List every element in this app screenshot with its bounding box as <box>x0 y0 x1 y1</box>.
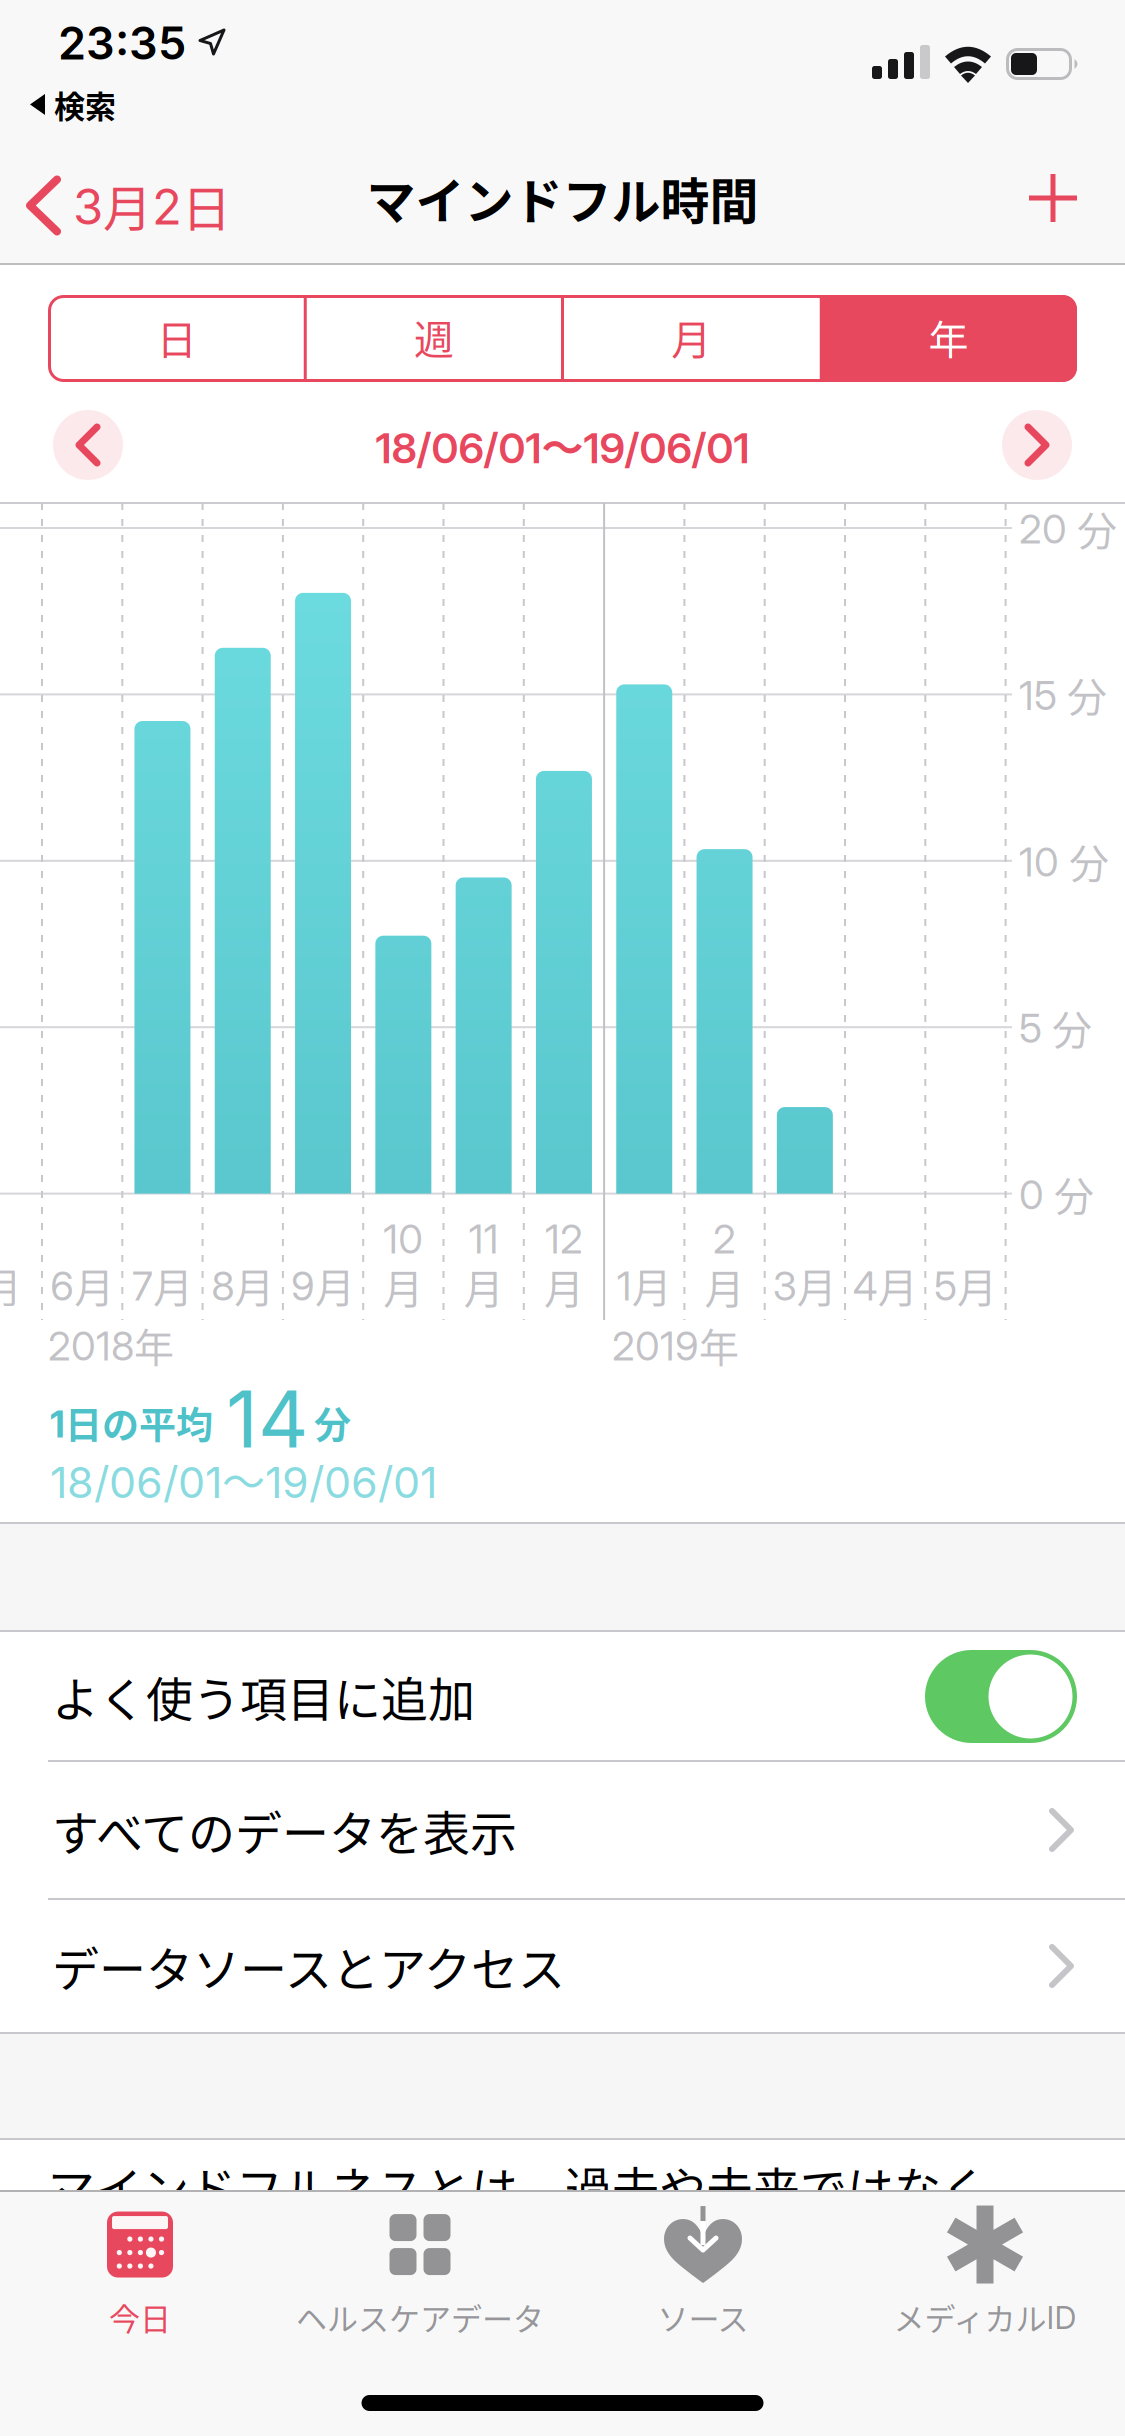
staticText: 月 <box>704 1257 744 1315</box>
staticText: 18/06/01〜19/06/01 <box>50 1448 437 1510</box>
button[interactable]: よく使う項目に追加 <box>925 1650 1077 1743</box>
staticText: 8月 <box>211 1256 274 1314</box>
staticText: 2019年 <box>612 1316 739 1374</box>
button[interactable]: 年 <box>820 295 1077 379</box>
staticText: 6月 <box>50 1256 114 1314</box>
button[interactable]: 今日 <box>0 2204 285 2342</box>
staticText: 月 <box>671 308 711 366</box>
staticText: 日 <box>157 308 197 366</box>
staticText: 10 <box>383 1215 423 1263</box>
button[interactable]: 週 <box>305 295 562 379</box>
button[interactable]: 月 <box>562 295 820 379</box>
staticText: 月 <box>544 1257 584 1315</box>
staticText: 7月 <box>132 1256 193 1314</box>
staticText: 週 <box>414 308 454 366</box>
button[interactable]: 前の期間 <box>53 410 123 480</box>
staticText: 10 分 <box>1019 832 1109 890</box>
staticText: 2018年 <box>48 1316 174 1374</box>
button[interactable]: ソース <box>558 2204 848 2342</box>
staticText: 11 <box>469 1215 499 1263</box>
staticText: 9月 <box>291 1256 355 1314</box>
staticText: 14 <box>226 1372 308 1466</box>
staticText: 15 分 <box>1019 665 1107 723</box>
staticText: 月 <box>0 1256 22 1314</box>
staticText: 5月 <box>934 1256 997 1314</box>
button[interactable]: データソースとアクセス <box>0 1900 1125 2032</box>
staticText: 1月 <box>617 1256 672 1314</box>
button[interactable]: ヘルスケアデータ <box>275 2204 565 2342</box>
staticText: 月 <box>383 1257 423 1315</box>
staticText: データソースとアクセス <box>52 1932 565 2000</box>
button[interactable]: 日 <box>48 295 305 379</box>
staticText: 1日の平均 <box>50 1396 213 1450</box>
button[interactable]: 3月2日 <box>30 170 231 241</box>
staticText: 5 分 <box>1019 998 1092 1056</box>
staticText: 今日 <box>109 2295 171 2339</box>
staticText: メディカルID <box>893 2295 1076 2339</box>
staticText: 分 <box>314 1396 351 1450</box>
staticText: 月 <box>464 1257 504 1315</box>
staticText: マインドフルネスとは、過去や未来ではなく、今この瞬間に意識を向けることです。 <box>48 2152 1035 2288</box>
staticText: すべてのデータを表示 <box>52 1796 517 1864</box>
staticText: 年 <box>928 308 968 366</box>
staticText: マインドフル時間 <box>366 162 758 233</box>
button[interactable]: 検索 <box>30 82 116 127</box>
button[interactable]: すべてのデータを表示 <box>0 1762 1125 1898</box>
button[interactable]: メディカルID <box>840 2204 1125 2342</box>
staticText: ヘルスケアデータ <box>296 2295 544 2339</box>
staticText: 12 <box>545 1215 583 1263</box>
button[interactable]: 追加 <box>1029 174 1077 222</box>
staticText: 18/06/01〜19/06/01 <box>375 415 749 475</box>
staticText: よく使う項目に追加 <box>52 1662 475 1730</box>
staticText: 0 分 <box>1019 1165 1094 1222</box>
staticText: 23:35 <box>58 16 186 70</box>
staticText: 検索 <box>54 82 116 127</box>
staticText: 3月 <box>773 1256 837 1314</box>
button[interactable]: 次の期間 <box>1002 410 1072 480</box>
staticText: ソース <box>657 2295 748 2339</box>
button[interactable]: よく使う項目に追加 <box>0 1632 1125 1760</box>
staticText: 20 分 <box>1019 499 1117 557</box>
staticText: 3月2日 <box>73 170 231 241</box>
staticText: 4月 <box>853 1256 918 1314</box>
staticText: 2 <box>713 1215 736 1263</box>
